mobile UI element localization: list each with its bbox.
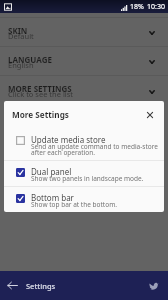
button[interactable]: Update media store (4, 128, 164, 160)
button[interactable]: Close (140, 105, 159, 124)
button[interactable]: Twitter (147, 279, 160, 292)
staticText: after each operation. (31, 148, 95, 157)
staticText: SKIN (8, 25, 28, 36)
staticText: 18% (130, 2, 144, 12)
staticText: MORE SETTINGS (8, 83, 72, 94)
staticText: Update media store (31, 134, 106, 145)
button[interactable]: SKIN (0, 17, 168, 47)
staticText: English (8, 60, 34, 70)
staticText: Send an update command to media-store (31, 142, 158, 151)
button[interactable]: Dual panel (4, 160, 164, 186)
staticText: LANGUAGE (8, 54, 52, 65)
button[interactable]: Bottom bar (4, 186, 164, 212)
button[interactable]: MORE SETTINGS (0, 75, 168, 105)
staticText: Dual panel (31, 166, 72, 177)
button[interactable]: Back (5, 278, 20, 293)
staticText: Default (8, 31, 34, 41)
staticText: Show top bar at the bottom. (31, 200, 117, 209)
staticText: Show two panels in landscape mode. (31, 174, 144, 183)
button[interactable]: LANGUAGE (0, 46, 168, 76)
staticText: Settings (26, 281, 56, 291)
staticText: Click to see the list (8, 89, 74, 99)
staticText: Bottom bar (31, 192, 74, 203)
staticText: More Settings (12, 109, 69, 120)
staticText: 10:30 (147, 2, 165, 12)
